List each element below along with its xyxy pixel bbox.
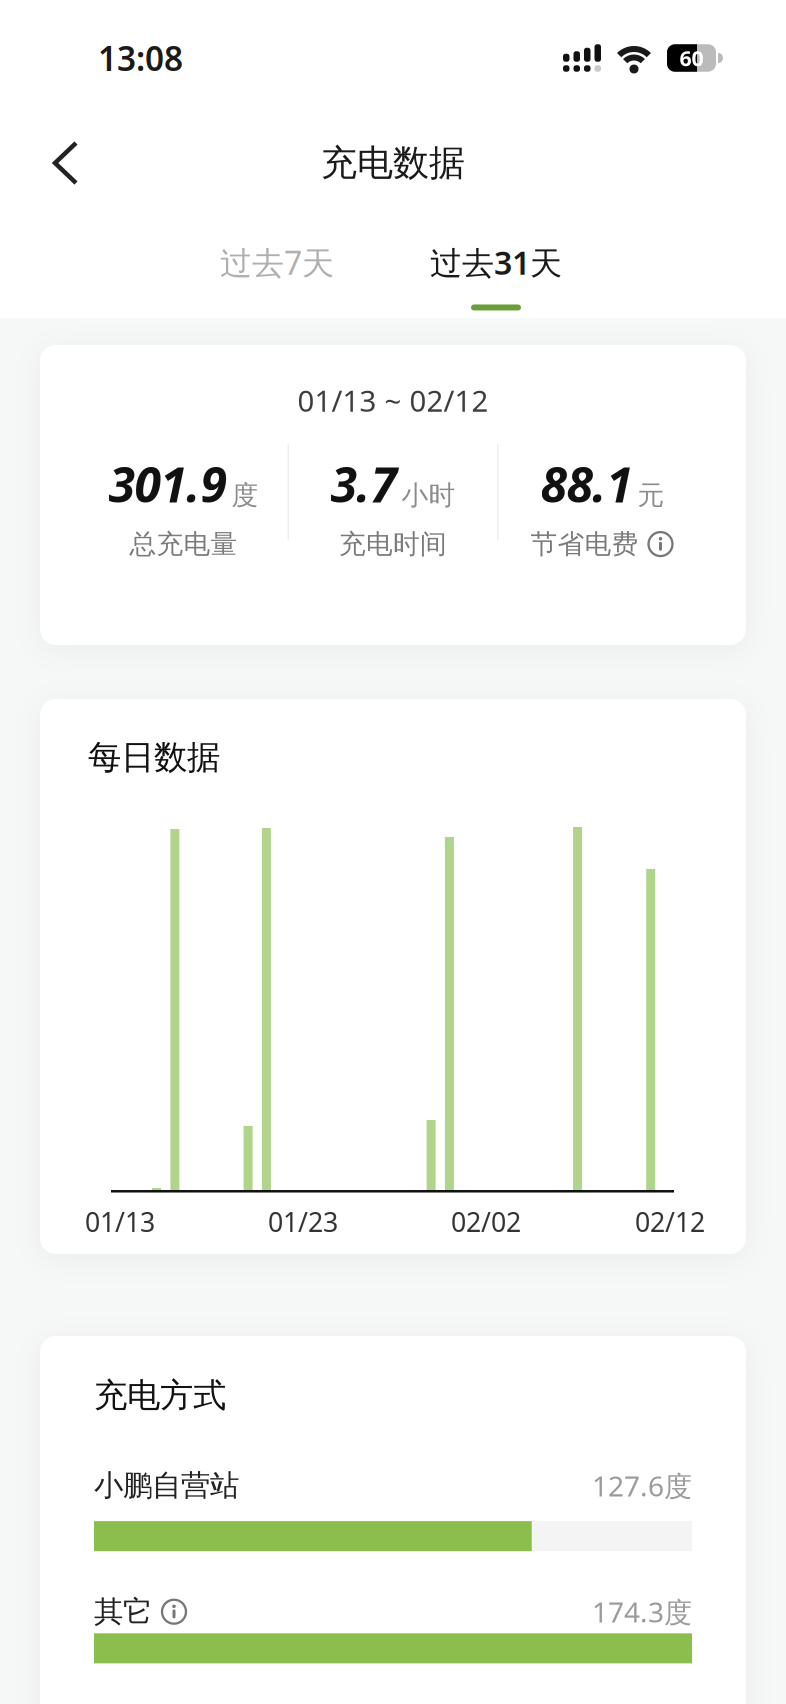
staticText: 其它 xyxy=(94,1594,152,1630)
staticText: 过去7天 xyxy=(220,241,334,283)
staticText: 88.1 xyxy=(540,452,632,516)
staticText: 度 xyxy=(231,479,258,512)
staticText: 每日数据 xyxy=(88,737,220,778)
staticText: 充电方式 xyxy=(94,1375,226,1416)
button[interactable]: 过去7天 xyxy=(167,241,386,310)
button[interactable]: Info xyxy=(160,1598,188,1626)
staticText: 174.3度 xyxy=(592,1593,692,1630)
staticText: 301.9 xyxy=(108,452,226,516)
staticText: 02/12 xyxy=(635,1204,705,1239)
staticText: 60 xyxy=(679,44,703,72)
button[interactable]: 过去31天 xyxy=(386,241,605,310)
staticText: 充电数据 xyxy=(321,141,465,185)
staticText: 127.6度 xyxy=(592,1467,692,1504)
staticText: 3.7 xyxy=(330,452,396,516)
staticText: 02/02 xyxy=(451,1204,521,1239)
staticText: 元 xyxy=(637,479,664,512)
staticText: 01/23 xyxy=(268,1204,338,1239)
staticText: 小时 xyxy=(401,479,455,512)
staticText: 01/13 xyxy=(85,1204,155,1239)
staticText: 小鹏自营站 xyxy=(94,1467,239,1503)
staticText: 01/13 ~ 02/12 xyxy=(297,381,488,420)
button[interactable]: Info xyxy=(646,530,674,558)
staticText: 过去31天 xyxy=(430,241,562,283)
staticText: 总充电量 xyxy=(129,528,237,560)
staticText: 充电时间 xyxy=(339,528,447,560)
staticText: 13:08 xyxy=(98,36,183,80)
staticText: 节省电费 xyxy=(530,528,638,560)
button[interactable]: Back xyxy=(0,130,102,196)
